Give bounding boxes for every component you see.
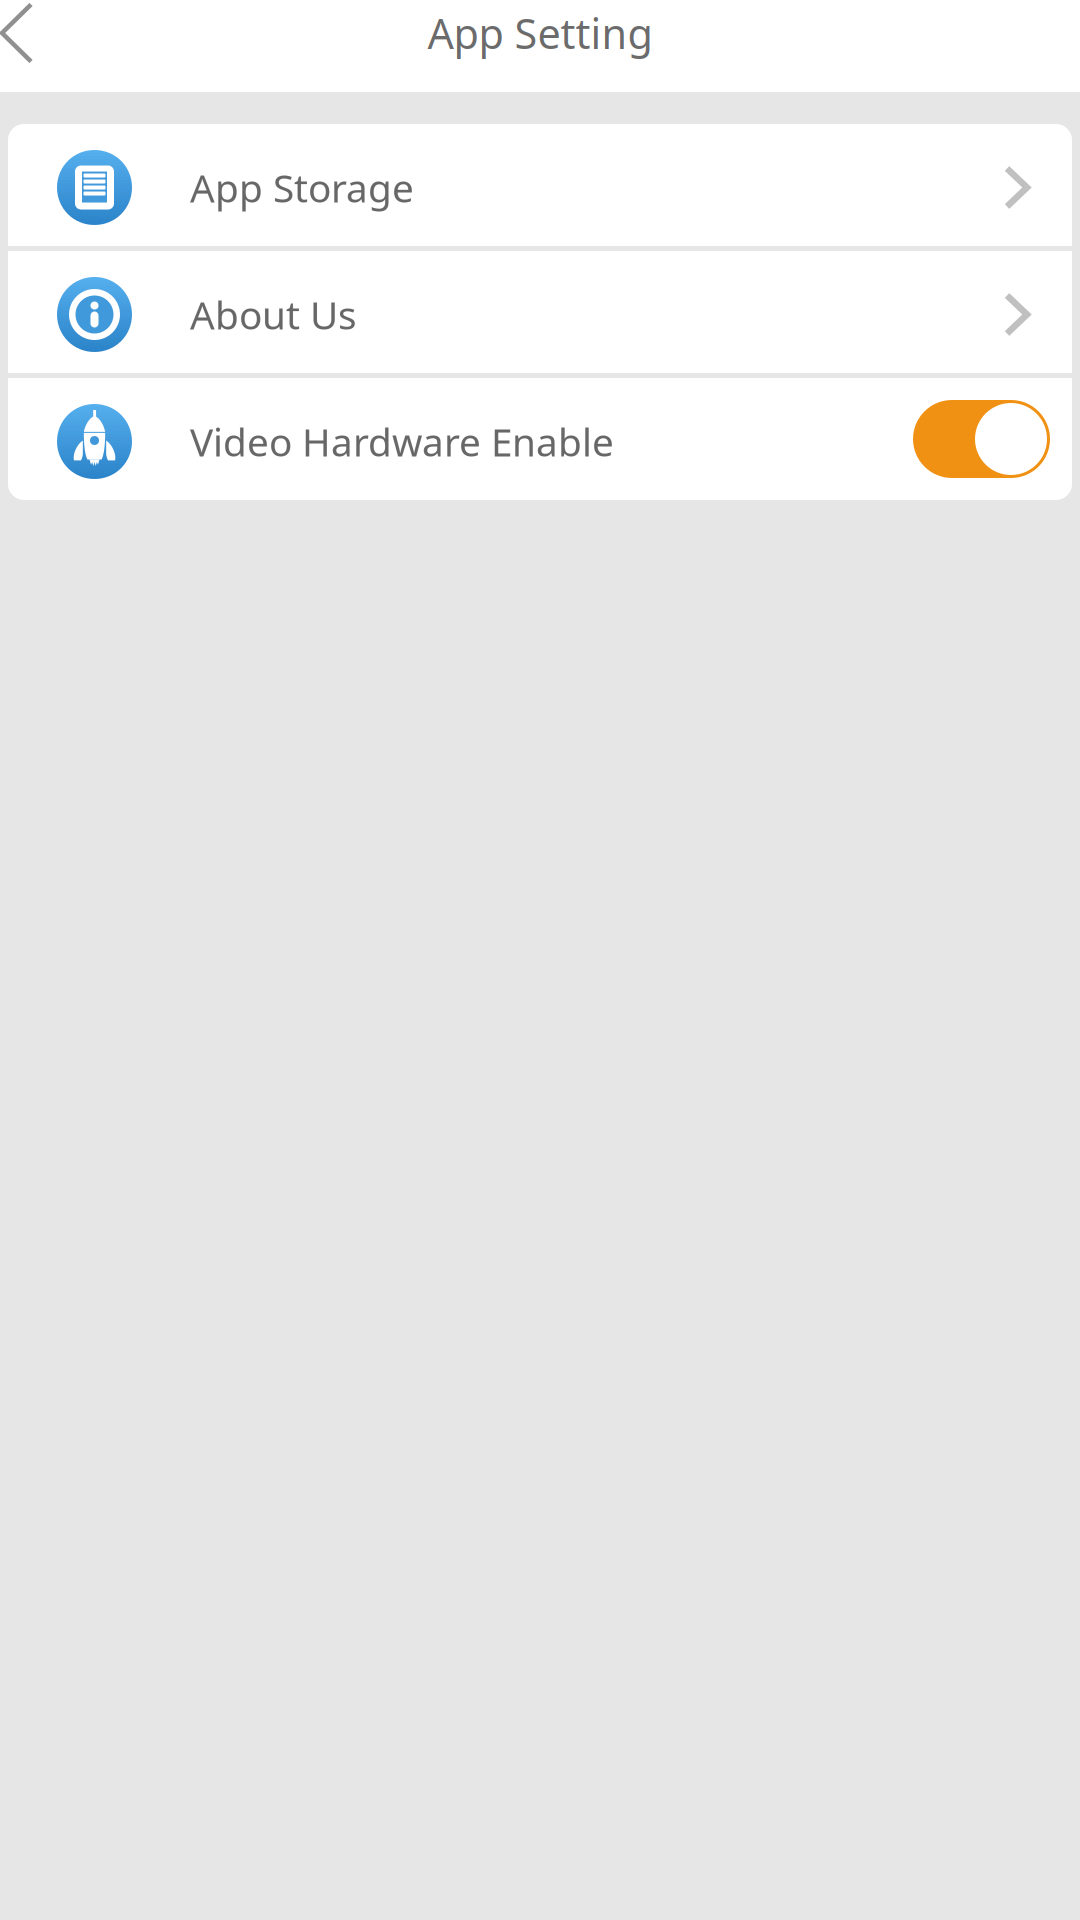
button[interactable]: About Us	[8, 251, 1072, 373]
staticText: About Us	[190, 289, 357, 340]
staticText: App Storage	[190, 162, 414, 213]
button[interactable]: App Storage	[8, 124, 1072, 246]
button[interactable]: Video Hardware Enable	[8, 378, 1072, 500]
staticText: App Setting	[427, 6, 652, 60]
staticText: Video Hardware Enable	[190, 416, 614, 467]
button[interactable]: Back	[0, 0, 71, 75]
